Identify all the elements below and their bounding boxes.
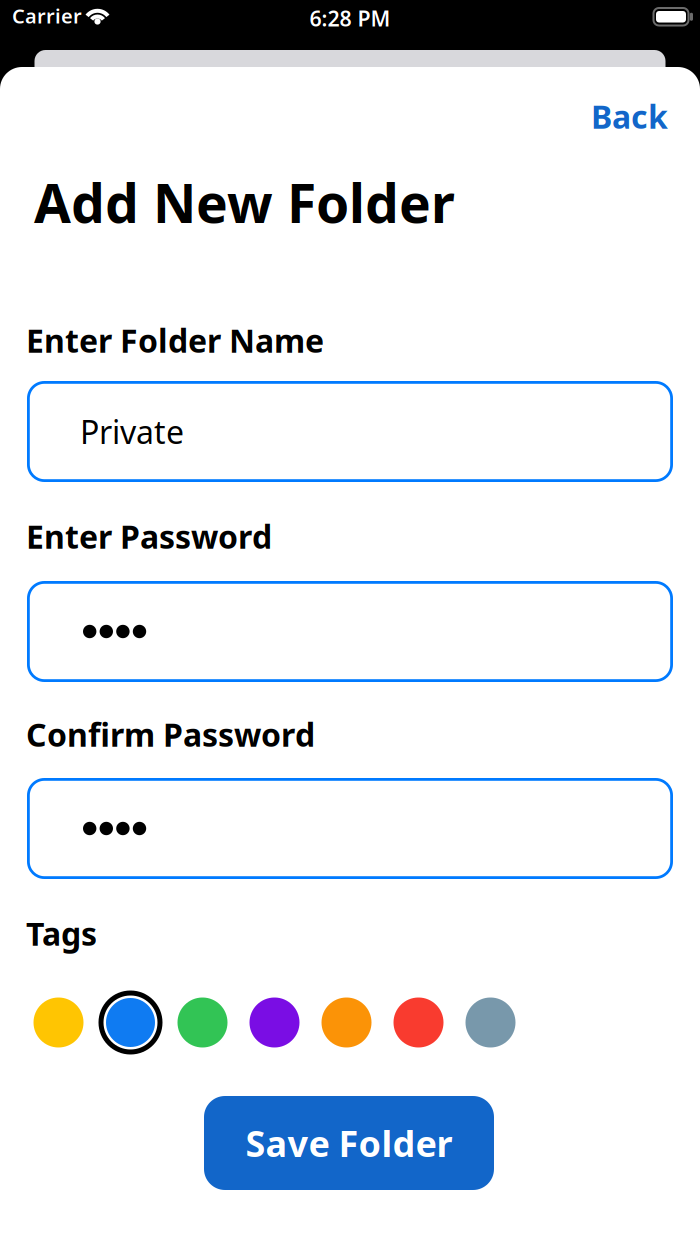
button[interactable] [462, 994, 518, 1050]
button[interactable] [27, 581, 673, 682]
staticText: Enter Folder Name [26, 319, 324, 361]
staticText: Carrier [12, 2, 82, 29]
button[interactable] [318, 994, 374, 1050]
button[interactable] [102, 994, 158, 1050]
button[interactable] [30, 994, 86, 1050]
button[interactable]: Back [591, 95, 668, 137]
button[interactable] [174, 994, 230, 1050]
staticText: Enter Password [26, 515, 272, 557]
staticText: Private [80, 410, 184, 453]
staticText: Confirm Password [26, 713, 315, 755]
staticText: 6:28 PM [309, 4, 390, 32]
staticText: Save Folder [245, 1119, 452, 1167]
button[interactable]: Private [27, 381, 673, 482]
staticText: Back [591, 95, 668, 137]
button[interactable] [246, 994, 302, 1050]
button[interactable] [27, 778, 673, 879]
staticText: Add New Folder [34, 167, 455, 238]
button[interactable] [390, 994, 446, 1050]
staticText: Tags [26, 912, 97, 954]
button[interactable]: Save Folder [204, 1096, 494, 1190]
